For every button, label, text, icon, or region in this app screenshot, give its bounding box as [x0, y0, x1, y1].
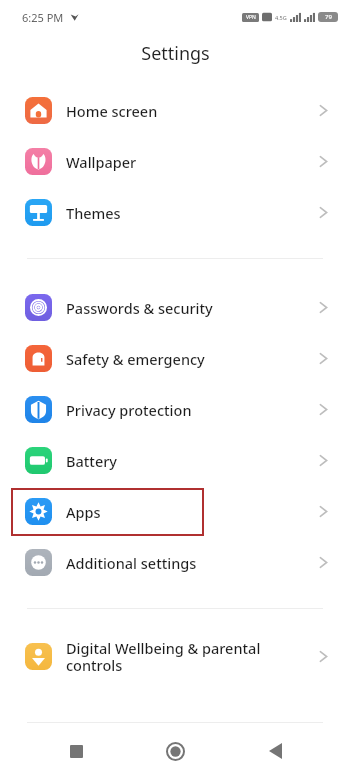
- button[interactable]: Wallpaper: [0, 136, 350, 187]
- staticText: Apps: [66, 502, 319, 522]
- staticText: Safety & emergency: [66, 349, 319, 369]
- staticText: Additional settings: [66, 553, 319, 573]
- button[interactable]: Apps: [0, 486, 350, 537]
- staticText: Passwords & security: [66, 298, 319, 318]
- button[interactable]: Safety & emergency: [0, 333, 350, 384]
- staticText: Themes: [66, 203, 319, 223]
- button[interactable]: Home screen: [0, 85, 350, 136]
- button[interactable]: Digital Wellbeing & parental controls: [0, 628, 350, 684]
- staticText: 6:25 PM: [22, 10, 64, 25]
- button[interactable]: Home: [151, 727, 199, 775]
- button[interactable]: Battery: [0, 435, 350, 486]
- button[interactable]: Back: [251, 727, 299, 775]
- button[interactable]: Recent apps: [52, 727, 100, 775]
- staticText: Home screen: [66, 101, 319, 121]
- staticText: Wallpaper: [66, 152, 319, 172]
- staticText: Digital Wellbeing & parental controls: [66, 638, 319, 675]
- staticText: 79: [325, 13, 332, 21]
- staticText: Settings: [141, 41, 210, 66]
- staticText: 4.5G: [275, 14, 287, 21]
- button[interactable]: Privacy protection: [0, 384, 350, 435]
- staticText: VPN: [246, 14, 256, 21]
- staticText: Battery: [66, 451, 319, 471]
- button[interactable]: Passwords & security: [0, 282, 350, 333]
- staticText: Privacy protection: [66, 400, 319, 420]
- button[interactable]: Themes: [0, 187, 350, 238]
- button[interactable]: Additional settings: [0, 537, 350, 588]
